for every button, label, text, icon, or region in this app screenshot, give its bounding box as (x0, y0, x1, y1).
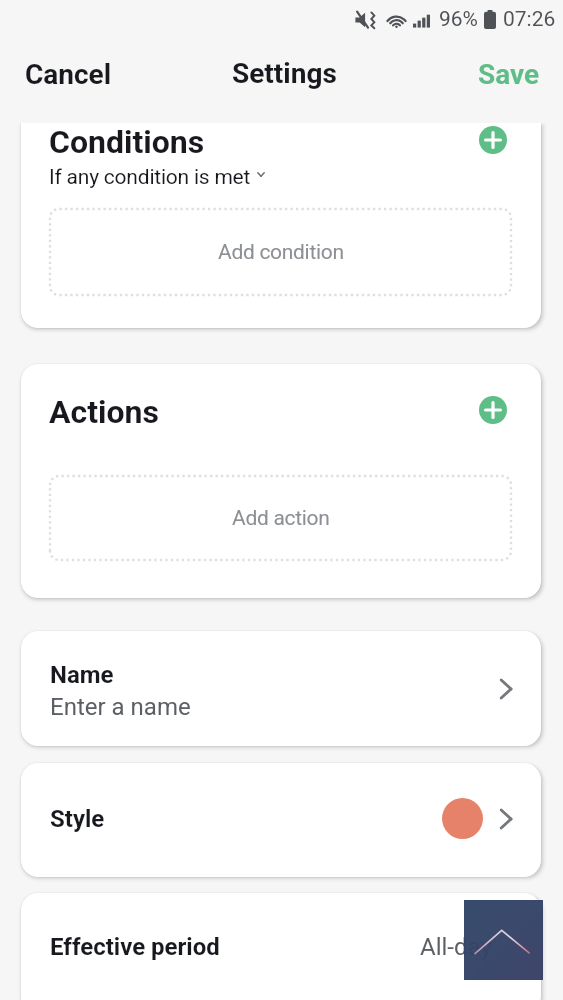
button[interactable]: Effective period (21, 893, 541, 1000)
staticText: 07:26 (503, 7, 556, 32)
staticText: Settings (232, 57, 337, 90)
staticText: 96% (439, 7, 478, 32)
staticText: Cancel (25, 58, 112, 91)
staticText: All-day (420, 933, 492, 961)
button[interactable]: Name (21, 631, 541, 746)
button[interactable]: Save (456, 46, 562, 103)
staticText: Add condition (218, 240, 344, 265)
button[interactable]: Add (479, 396, 507, 424)
staticText: Add action (232, 506, 330, 531)
staticText: Effective period (50, 933, 220, 961)
button[interactable]: Cancel (3, 46, 134, 103)
staticText: Enter a name (50, 693, 191, 721)
staticText: Name (50, 661, 114, 689)
button[interactable]: Add (479, 126, 507, 154)
button[interactable]: Add action (50, 476, 511, 560)
staticText: Style (50, 805, 105, 833)
staticText: Conditions (49, 123, 205, 161)
button[interactable]: Collapse (464, 900, 543, 980)
staticText: Actions (49, 393, 159, 431)
staticText: Save (478, 58, 540, 91)
staticText: If any condition is met (49, 165, 251, 190)
button[interactable]: Style (21, 763, 541, 877)
button[interactable]: Add condition (50, 209, 511, 295)
